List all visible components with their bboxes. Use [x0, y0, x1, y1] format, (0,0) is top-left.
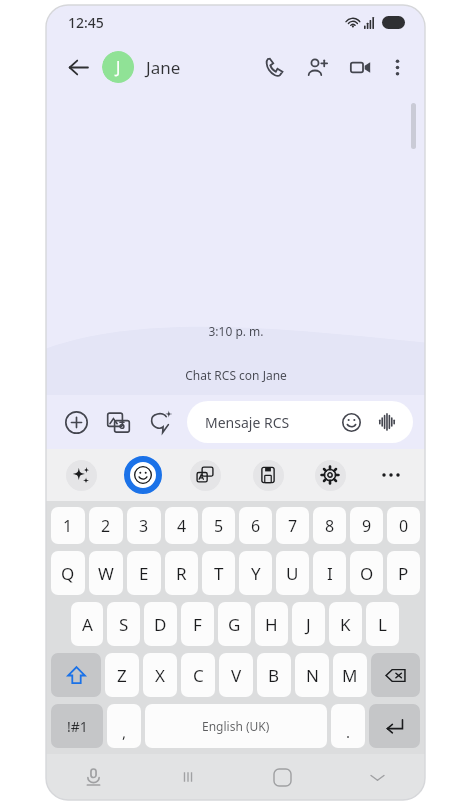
button[interactable]: Enter	[369, 704, 420, 748]
button[interactable]: U	[276, 551, 309, 595]
button[interactable]: 3	[127, 507, 161, 544]
button[interactable]: 8	[313, 507, 346, 544]
button[interactable]: Backspace	[371, 653, 420, 697]
button[interactable]: Stickers	[144, 406, 176, 438]
button[interactable]: Home	[235, 754, 330, 800]
button[interactable]: R	[165, 551, 198, 595]
button[interactable]: L	[366, 602, 399, 646]
button[interactable]: Add people	[301, 51, 333, 83]
button[interactable]: More	[373, 457, 409, 493]
staticText: 6	[251, 515, 261, 537]
staticText: ,	[122, 722, 127, 742]
staticText: T	[214, 562, 224, 585]
button[interactable]: Mensaje RCS	[187, 401, 413, 443]
button[interactable]: K	[329, 602, 362, 646]
button[interactable]: !#1	[51, 704, 103, 748]
button[interactable]: Q	[51, 551, 85, 595]
button[interactable]: J	[102, 51, 181, 83]
button[interactable]: T	[202, 551, 235, 595]
button[interactable]: Clipboard	[249, 456, 287, 494]
staticText: P	[398, 562, 409, 585]
button[interactable]: 0	[387, 507, 420, 544]
button[interactable]: 2	[89, 507, 123, 544]
button[interactable]: B	[257, 653, 291, 697]
button[interactable]: Gallery	[102, 406, 134, 438]
staticText: X	[155, 664, 165, 687]
button[interactable]: M	[333, 653, 367, 697]
button[interactable]: V	[219, 653, 253, 697]
button[interactable]: English (UK)	[145, 704, 327, 748]
button[interactable]: G	[218, 602, 251, 646]
button[interactable]: E	[127, 551, 161, 595]
button[interactable]: Y	[239, 551, 272, 595]
staticText: W	[98, 562, 114, 585]
staticText: 3	[139, 515, 149, 537]
staticText: S	[119, 613, 129, 636]
staticText: Mensaje RCS	[205, 413, 290, 432]
staticText: 12:45	[68, 13, 104, 32]
button[interactable]: 6	[239, 507, 272, 544]
button[interactable]: Settings	[311, 456, 349, 494]
button[interactable]: O	[350, 551, 383, 595]
button[interactable]: Video call	[344, 51, 376, 83]
button[interactable]: A	[71, 602, 103, 646]
staticText: V	[231, 664, 242, 687]
button[interactable]: Hide keyboard	[330, 754, 425, 800]
button[interactable]: Translate	[186, 456, 224, 494]
staticText: 4	[177, 515, 187, 537]
button[interactable]: Emoji	[124, 456, 162, 494]
staticText: O	[360, 562, 374, 585]
staticText: D	[154, 613, 167, 636]
staticText: English (UK)	[202, 718, 270, 734]
button[interactable]: Back	[60, 49, 96, 85]
staticText: .	[346, 722, 351, 742]
button[interactable]: I	[313, 551, 346, 595]
staticText: C	[193, 664, 204, 687]
button[interactable]: W	[89, 551, 123, 595]
staticText: H	[265, 613, 278, 636]
button[interactable]: 4	[165, 507, 198, 544]
button[interactable]: Call	[258, 51, 290, 83]
staticText: A	[82, 613, 93, 636]
staticText: 8	[325, 515, 335, 537]
staticText: Z	[117, 664, 127, 687]
staticText: M	[342, 664, 358, 687]
button[interactable]: Recents	[140, 754, 235, 800]
button[interactable]: Voice message	[375, 410, 399, 434]
button[interactable]: More options	[381, 51, 413, 83]
button[interactable]: Emoji	[339, 410, 363, 434]
staticText: 1	[63, 515, 73, 537]
button[interactable]: D	[144, 602, 177, 646]
button[interactable]: N	[295, 653, 329, 697]
staticText: F	[193, 613, 202, 636]
button[interactable]: 5	[202, 507, 235, 544]
button[interactable]: Add attachment	[60, 406, 92, 438]
staticText: I	[327, 562, 333, 585]
staticText: Jane	[146, 56, 181, 79]
button[interactable]: Shift	[51, 653, 101, 697]
button[interactable]: F	[181, 602, 214, 646]
button[interactable]: Z	[105, 653, 139, 697]
staticText: R	[176, 562, 187, 585]
button[interactable]: H	[255, 602, 288, 646]
button[interactable]: 7	[276, 507, 309, 544]
staticText: G	[228, 613, 241, 636]
staticText: 2	[101, 515, 111, 537]
button[interactable]: J	[292, 602, 325, 646]
button[interactable]: .	[331, 704, 365, 748]
staticText: Y	[251, 562, 261, 585]
button[interactable]: Magic compose	[62, 456, 100, 494]
button[interactable]: Voice input	[46, 754, 140, 800]
staticText: N	[306, 664, 319, 687]
button[interactable]: P	[387, 551, 420, 595]
button[interactable]: C	[181, 653, 215, 697]
staticText: 5	[214, 515, 224, 537]
staticText: Chat RCS con Jane	[185, 367, 287, 383]
staticText: Q	[61, 562, 75, 585]
button[interactable]: 9	[350, 507, 383, 544]
button[interactable]: S	[107, 602, 140, 646]
button[interactable]: ,	[107, 704, 141, 748]
button[interactable]: X	[143, 653, 177, 697]
staticText: L	[378, 613, 387, 636]
button[interactable]: 1	[51, 507, 85, 544]
